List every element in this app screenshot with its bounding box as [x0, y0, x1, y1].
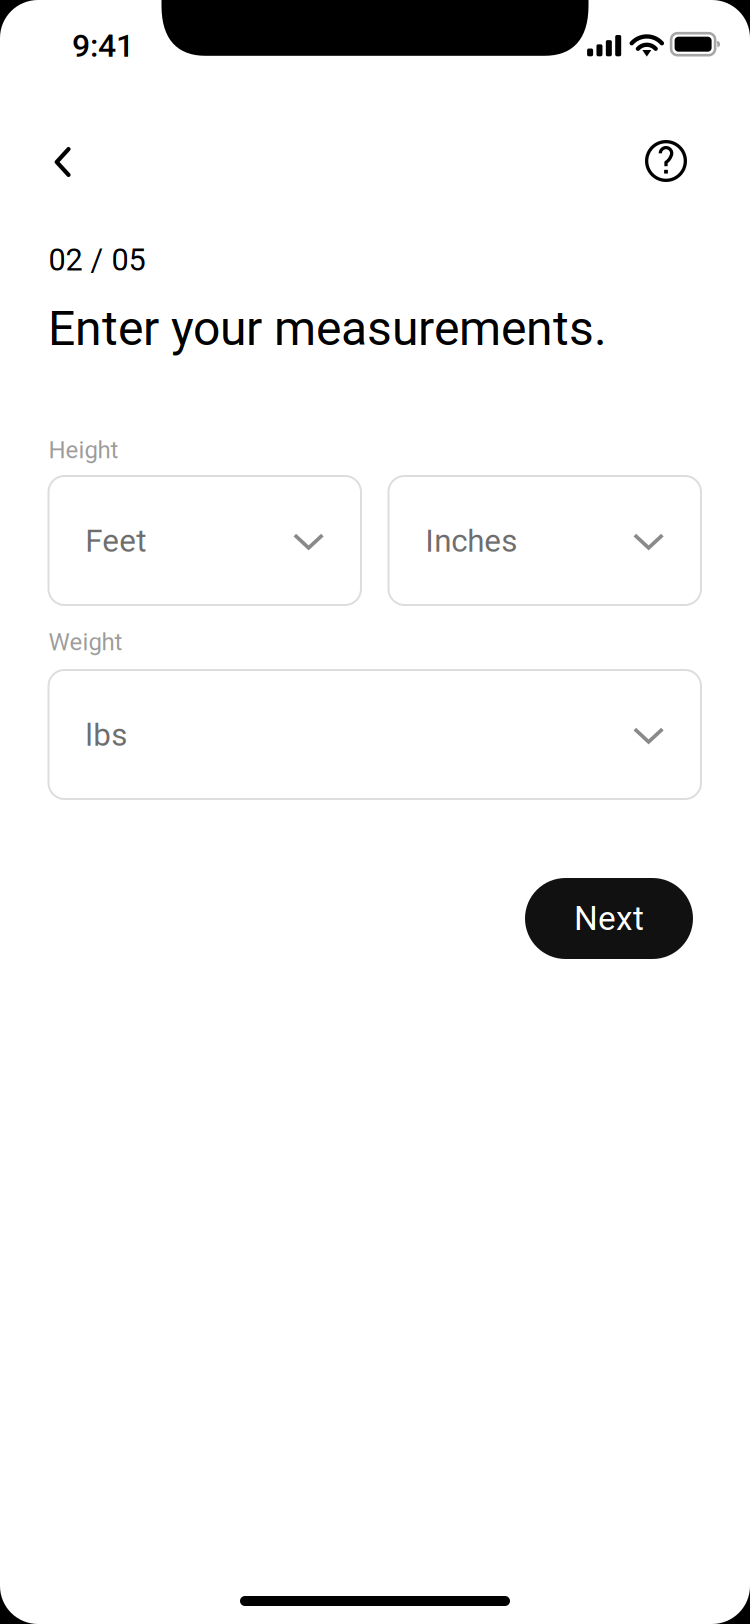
button[interactable]: Feet	[48, 476, 361, 605]
staticText: Inches	[425, 523, 517, 559]
staticText: Feet	[85, 523, 146, 559]
staticText: lbs	[85, 717, 127, 753]
staticText: Enter your measurements.	[48, 300, 607, 357]
button[interactable]: lbs	[48, 670, 701, 799]
staticText: 9:41	[72, 27, 134, 64]
staticText: 02 / 05	[48, 242, 145, 278]
staticText: Next	[574, 899, 644, 938]
button[interactable]: Help	[630, 125, 702, 197]
staticText: Weight	[48, 628, 122, 656]
staticText: Height	[48, 436, 118, 464]
button[interactable]: Next	[525, 878, 693, 959]
button[interactable]: Back	[27, 126, 99, 198]
button[interactable]: Inches	[388, 476, 701, 605]
